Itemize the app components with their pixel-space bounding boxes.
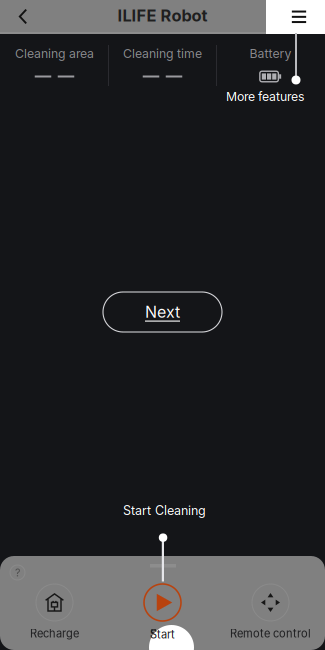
- staticText: Battery: [249, 46, 291, 61]
- staticText: ILIFE Robot: [117, 6, 207, 25]
- staticText: Cleaning time: [123, 46, 202, 61]
- button[interactable]: Next: [103, 292, 222, 332]
- staticText: More features: [226, 89, 304, 104]
- staticText: Next: [145, 302, 180, 322]
- staticText: Recharge: [30, 627, 79, 640]
- staticText: Start: [150, 627, 175, 640]
- staticText: Start: [150, 628, 175, 641]
- button[interactable]: Recharge: [0, 584, 108, 650]
- button[interactable]: Back: [0, 0, 46, 32]
- button[interactable]: Start: [108, 584, 216, 650]
- staticText: Cleaning area: [15, 46, 94, 61]
- staticText: Start Cleaning: [123, 503, 206, 518]
- staticText: ?: [15, 566, 20, 579]
- button[interactable]: Menu: [266, 0, 325, 32]
- button[interactable]: Remote control: [216, 584, 324, 650]
- staticText: Remote control: [230, 627, 311, 640]
